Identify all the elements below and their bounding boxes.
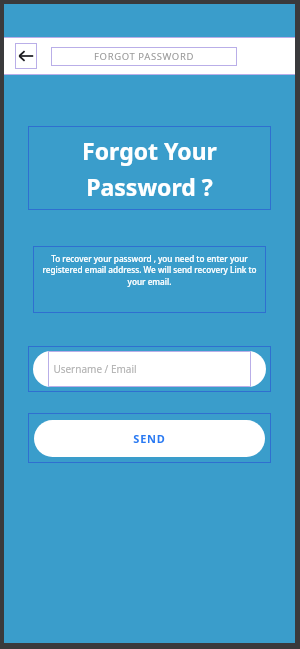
staticText: Username / Email <box>53 362 137 376</box>
staticText: To recover your password , you need to e… <box>39 253 260 288</box>
staticText: FORGOT PASSWORD <box>94 50 194 63</box>
button[interactable]: SEND <box>34 420 265 457</box>
staticText: Forgot Your <box>82 135 217 166</box>
staticText: SEND <box>133 431 166 446</box>
button[interactable]: Username / Email <box>33 351 266 387</box>
button[interactable]: Back <box>15 43 37 69</box>
staticText: Password ? <box>86 171 213 202</box>
